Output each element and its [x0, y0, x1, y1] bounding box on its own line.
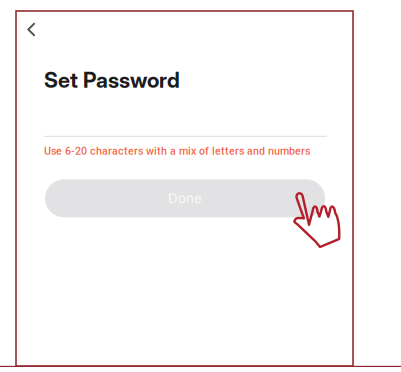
button[interactable]: Done [45, 179, 325, 217]
staticText: Use 6-20 characters with a mix of letter… [44, 145, 310, 157]
button[interactable]: Back [16, 11, 50, 48]
staticText: Set Password [44, 67, 180, 93]
staticText: Done [168, 190, 202, 206]
